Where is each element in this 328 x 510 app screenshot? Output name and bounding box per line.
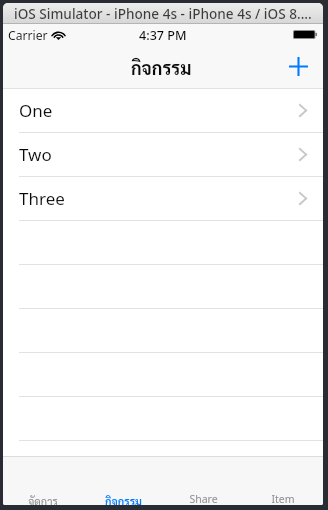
button[interactable]: Two xyxy=(3,133,323,177)
staticText: iOS Simulator - iPhone 4s - iPhone 4s / … xyxy=(14,4,312,23)
staticText: Two xyxy=(19,143,52,166)
staticText: One xyxy=(19,99,53,122)
button[interactable]: One xyxy=(3,89,323,133)
staticText: Three xyxy=(19,187,65,210)
button[interactable]: Item xyxy=(243,457,323,505)
staticText: Carrier xyxy=(8,27,48,44)
staticText: กิจกรรม xyxy=(131,56,192,79)
button[interactable]: Share xyxy=(163,457,243,505)
button[interactable]: จัดการ xyxy=(3,457,83,505)
button[interactable]: Three xyxy=(3,177,323,221)
staticText: จัดการ xyxy=(28,494,58,505)
button[interactable]: Add xyxy=(282,50,314,82)
staticText: 4:37 PM xyxy=(139,27,187,44)
button[interactable]: กิจกรรม xyxy=(83,457,163,505)
staticText: Share xyxy=(189,492,218,505)
staticText: Item xyxy=(271,492,295,505)
staticText: กิจกรรม xyxy=(105,494,142,505)
